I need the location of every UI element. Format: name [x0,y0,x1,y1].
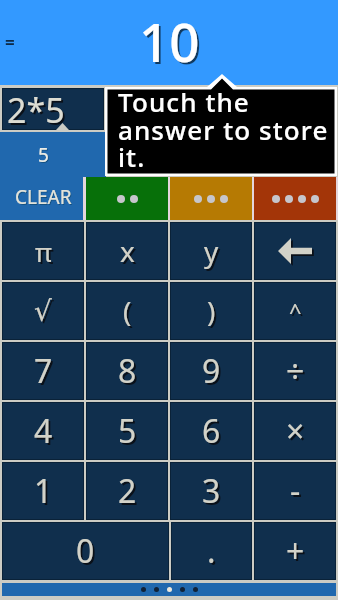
button[interactable]: √ [3,283,83,339]
staticText: y [206,234,221,272]
staticText: 0 [78,531,97,575]
button[interactable]: 7 [3,343,83,399]
staticText: 5 [38,142,49,168]
staticText: √ [34,295,52,328]
staticText: + [288,531,307,575]
staticText: × [288,411,307,455]
staticText: π [37,236,54,271]
button[interactable]: 3 [171,463,251,519]
button[interactable]: 0 [3,523,168,579]
staticText: 9 [204,351,223,395]
staticText: ÷ [288,351,307,395]
staticText: ^ [291,298,304,328]
staticText: ( [123,292,132,330]
button[interactable]: 5 [0,132,106,220]
staticText: y [204,232,219,270]
staticText: CLEAR [15,184,72,210]
button[interactable]: × [255,403,335,459]
staticText: x [122,234,137,272]
button[interactable]: 2 [87,463,167,519]
staticText: . [209,531,218,575]
staticText: x [120,232,135,270]
staticText: = [5,31,15,54]
button[interactable]: y [171,223,251,279]
staticText: ( [125,294,134,332]
staticText: 7 [34,349,53,393]
staticText: 5 [118,409,137,453]
staticText: 9 [202,349,221,393]
staticText: + [286,529,305,573]
staticText: 6 [204,411,223,455]
staticText: . [207,529,216,573]
button[interactable]: Memory slot 3 [170,177,252,220]
staticText: 10 [141,7,202,79]
staticText: ) [207,292,216,330]
staticText: CLEAR [16,185,73,211]
button[interactable]: 1 [3,463,83,519]
button[interactable]: 6 [171,403,251,459]
staticText: ÷ [286,349,305,393]
button[interactable]: 5 [87,403,167,459]
button[interactable]: + [255,523,335,579]
button[interactable]: π [3,223,83,279]
staticText: 5 [120,411,139,455]
button[interactable]: Memory slot 2 [86,177,168,220]
button[interactable]: 8 [87,343,167,399]
button[interactable]: Backspace [255,223,335,279]
other: Backspace [278,240,312,262]
staticText: 2*5 [9,89,67,131]
staticText: 6 [202,409,221,453]
button[interactable]: Equals [5,31,15,54]
staticText: 4 [34,409,53,453]
staticText: 4 [36,411,55,455]
button[interactable]: . [172,523,251,579]
staticText: 7 [36,351,55,395]
button[interactable]: 9 [171,343,251,399]
button[interactable]: - [255,463,335,519]
staticText: ) [209,294,218,332]
staticText: 2*5 [7,87,65,129]
button[interactable]: 4 [3,403,83,459]
staticText: 8 [120,351,139,395]
staticText: Touch the answer to store it. [118,84,329,174]
staticText: - [292,471,303,515]
staticText: π [35,234,52,269]
staticText: 1 [36,471,55,515]
staticText: 5 [39,143,50,169]
staticText: - [290,469,301,513]
staticText: √ [36,297,54,330]
staticText: 10 [139,5,200,77]
button[interactable] [3,89,103,129]
button[interactable]: ( [87,283,167,339]
staticText: ^ [289,296,302,326]
button[interactable]: ) [171,283,251,339]
staticText: 0 [76,529,95,573]
staticText: 8 [118,349,137,393]
staticText: 2 [118,469,137,513]
staticText: 2 [120,471,139,515]
staticText: 1 [34,469,53,513]
staticText: × [286,409,305,453]
staticText: 3 [204,471,223,515]
button[interactable]: x [87,223,167,279]
staticText: 3 [202,469,221,513]
button[interactable]: ^ [255,283,335,339]
button[interactable]: Memory slot 4 [254,177,336,220]
button[interactable]: ÷ [255,343,335,399]
